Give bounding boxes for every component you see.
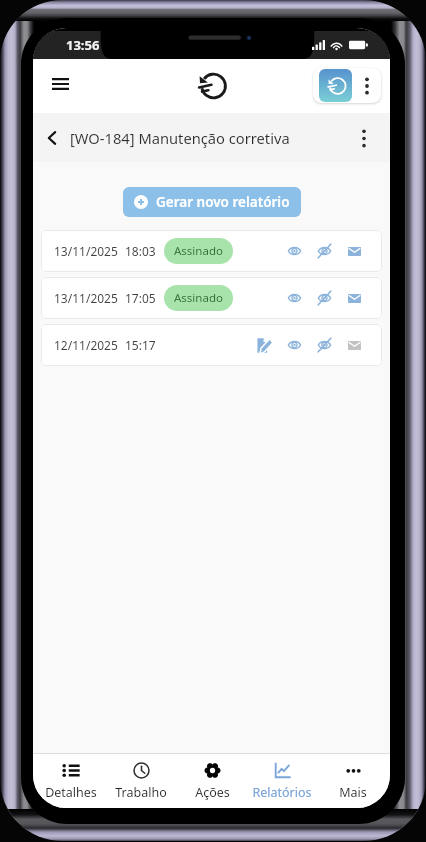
button[interactable]: Ações [179,758,245,805]
button[interactable]: Trabalho [108,758,174,805]
staticText: Mais [339,784,367,801]
button[interactable]: View [279,281,309,315]
button[interactable]: 12/11/2025 [41,324,382,366]
staticText: Detalhes [45,784,97,801]
button[interactable]: Refresh [319,69,352,102]
staticText: 13:56 [66,36,100,54]
button[interactable]: Menu [43,67,77,101]
staticText: Trabalho [115,784,167,801]
button[interactable]: Edit [249,328,279,362]
staticText: 12/11/2025 [54,337,118,353]
button[interactable]: Hide [309,234,339,268]
button[interactable]: Detalhes [38,758,104,805]
button[interactable]: Email [339,281,369,315]
staticText: Assinado [174,243,223,259]
button[interactable]: Relatórios [249,758,315,805]
button[interactable]: Email [339,234,369,268]
button[interactable]: Hide [309,328,339,362]
staticText: 17:05 [125,290,156,306]
button[interactable]: 13/11/2025 [41,230,382,272]
staticText: [WO-184] Manutenção corretiva [70,128,290,148]
button[interactable]: Back [39,125,65,151]
button[interactable]: More options [350,124,378,152]
button[interactable]: View [279,234,309,268]
button[interactable]: More options [352,68,381,103]
staticText: 13/11/2025 [54,290,118,306]
staticText: Assinado [174,290,223,306]
staticText: Gerar novo relatório [156,193,290,211]
staticText: 18:03 [125,243,156,259]
staticText: 13/11/2025 [54,243,118,259]
button[interactable]: Email [339,328,369,362]
button[interactable]: View [279,328,309,362]
button[interactable]: 13/11/2025 [41,277,382,319]
button[interactable]: Mais [320,758,386,805]
button[interactable]: Gerar novo relatório [123,187,301,217]
button[interactable]: Hide [309,281,339,315]
staticText: Ações [195,784,230,801]
staticText: 15:17 [125,337,156,353]
staticText: Relatórios [252,784,312,801]
